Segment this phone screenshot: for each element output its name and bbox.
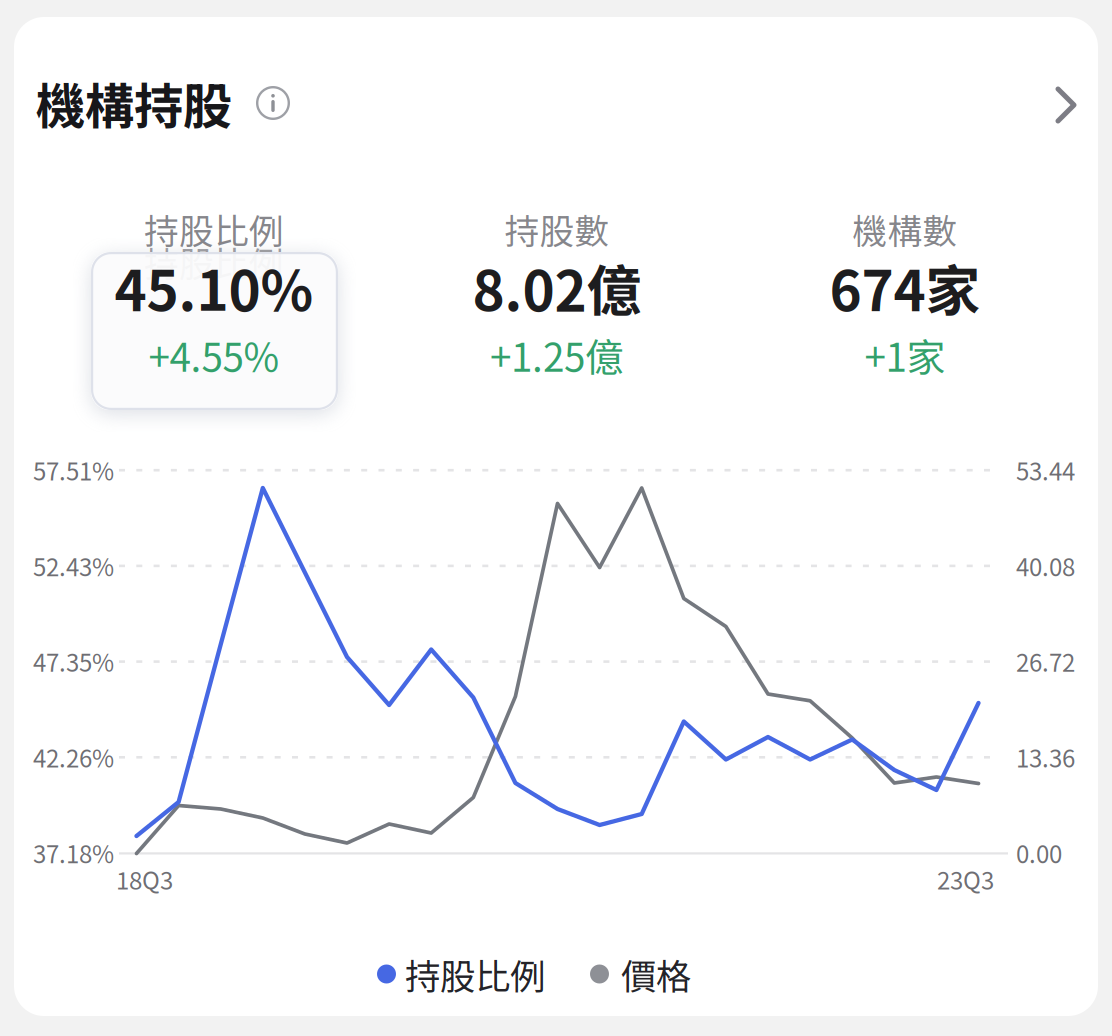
staticText: 18Q3 [116,862,173,896]
staticText: 8.02億 [472,247,641,327]
button[interactable]: 持股比例 [377,954,545,994]
staticText: 價格 [621,948,691,1000]
staticText: 40.08 [1016,548,1075,583]
staticText: 機構持股 [36,67,232,139]
staticText: 57.51% [33,453,114,487]
staticText: 持股比例 [144,237,284,287]
staticText: 持股數 [504,204,609,254]
button[interactable]: 價格 [590,954,691,994]
button[interactable] [0,0,360,200]
staticText: 26.72 [1016,644,1075,679]
staticText: 674家 [829,247,980,327]
staticText: 23Q3 [937,862,994,896]
staticText: 0.00 [1016,835,1062,870]
button[interactable]: 機構數 [0,0,360,200]
staticText: 45.10% [114,247,313,327]
staticText: +1家 [864,327,945,383]
staticText: 42.26% [33,740,114,774]
staticText: 53.44 [1016,453,1075,487]
staticText: 持股比例 [144,204,284,254]
button[interactable]: 持股數 [0,0,360,200]
staticText: 47.35% [33,644,114,679]
staticText: +4.55% [148,327,279,383]
staticText: 持股比例 [405,948,545,1000]
staticText: 13.36 [1016,740,1075,774]
staticText: +1.25億 [490,327,624,383]
button[interactable]: 機構持股 [0,0,400,50]
staticText: 機構數 [852,204,957,254]
staticText: 52.43% [33,548,114,583]
staticText: 37.18% [33,835,114,870]
